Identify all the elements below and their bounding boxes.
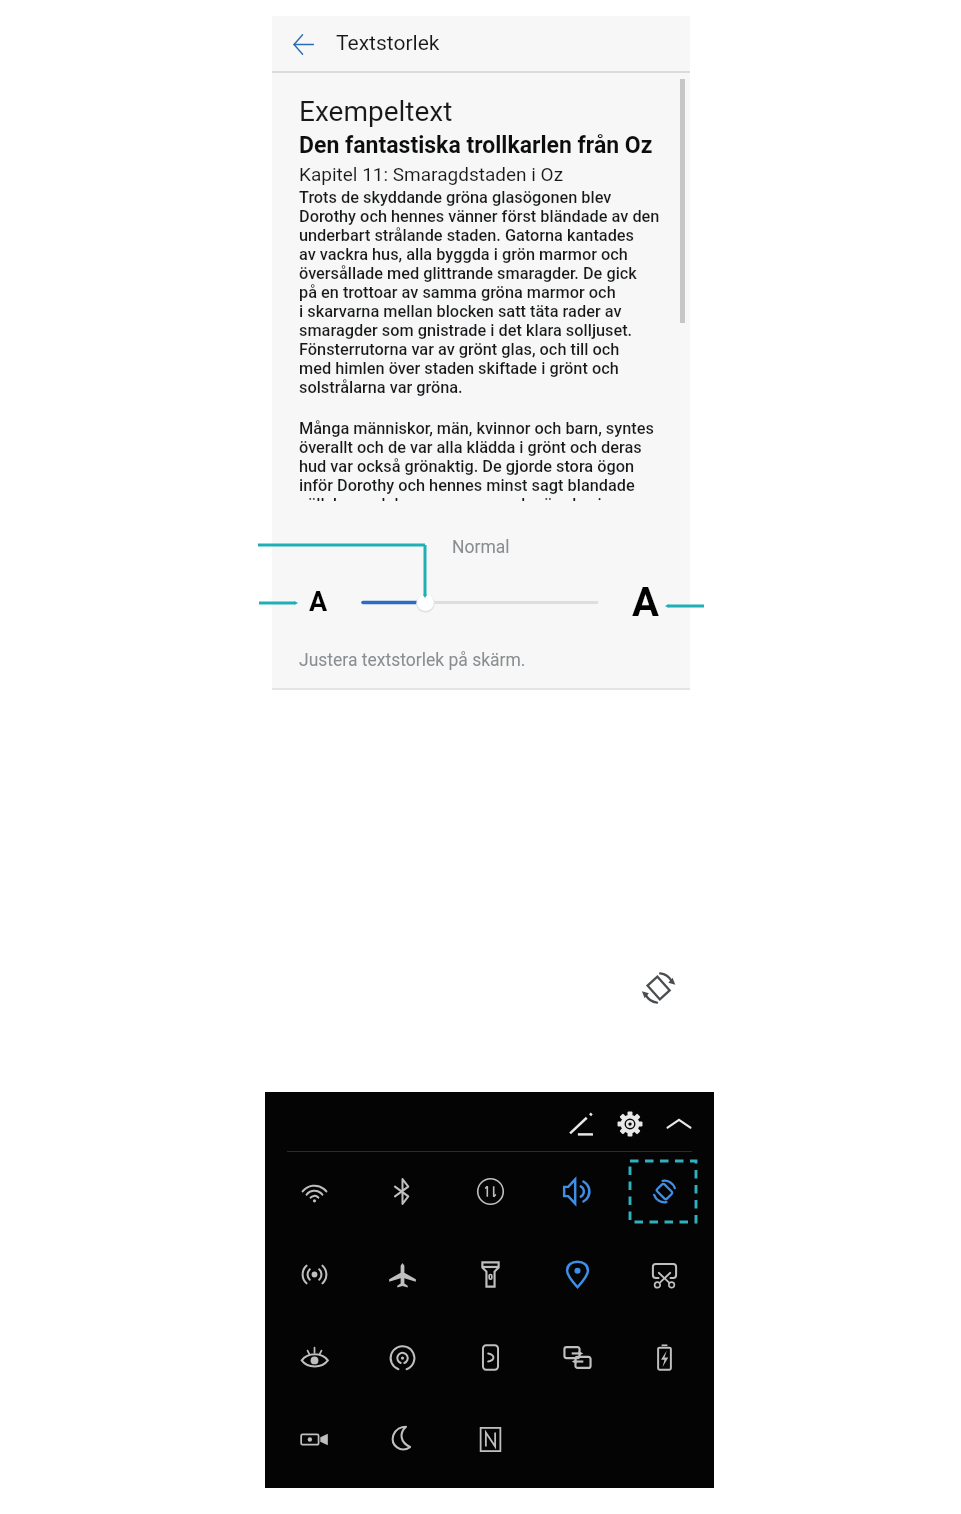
button[interactable]: Auto-rotate screen — [636, 966, 682, 1010]
button[interactable]: Screenshot — [621, 1234, 707, 1314]
staticText: Normal — [452, 537, 510, 558]
button[interactable]: Smaller text — [298, 582, 338, 622]
button[interactable]: Flashlight — [447, 1234, 533, 1314]
staticText: Kapitel 11: Smaragdstaden i Oz — [299, 163, 564, 185]
button[interactable]: Hotspot — [271, 1234, 357, 1314]
button[interactable]: Sound — [534, 1151, 620, 1231]
button[interactable]: Collapse — [656, 1101, 702, 1147]
staticText: Justera textstorlek på skärm. — [299, 650, 526, 671]
button[interactable]: Wi-Fi — [271, 1151, 357, 1231]
button[interactable]: Mobile data — [447, 1151, 533, 1231]
button[interactable]: Eye comfort — [271, 1317, 357, 1397]
button[interactable]: One-handed mode — [447, 1317, 533, 1397]
button[interactable]: Text size slider, Normal — [272, 576, 690, 632]
button[interactable]: Auto-rotate — [621, 1151, 707, 1231]
staticText: Trots de skyddande gröna glasögonen blev… — [299, 188, 660, 397]
button[interactable]: Settings — [607, 1101, 653, 1147]
button[interactable]: Airplane mode — [359, 1234, 445, 1314]
staticText: Den fantastiska trollkarlen från Oz — [299, 132, 653, 159]
button[interactable]: Bluetooth — [359, 1151, 445, 1231]
staticText: A — [632, 579, 659, 626]
staticText: Exempeltext — [299, 95, 453, 128]
button[interactable]: Do not disturb — [359, 1399, 445, 1479]
button[interactable]: Screen recorder — [271, 1399, 357, 1479]
button[interactable]: Location — [534, 1234, 620, 1314]
button[interactable]: Multi-window — [534, 1317, 620, 1397]
button[interactable]: Larger text — [619, 576, 671, 628]
button[interactable]: Screen cast — [359, 1317, 445, 1397]
button[interactable]: Back — [285, 26, 321, 62]
button[interactable]: Edit — [558, 1101, 604, 1147]
staticText: A — [309, 586, 328, 618]
staticText: Textstorlek — [336, 31, 440, 56]
button[interactable]: NFC — [447, 1399, 533, 1479]
button[interactable]: Power saving — [621, 1317, 707, 1397]
staticText: Många människor, män, kvinnor och barn, … — [299, 419, 654, 514]
